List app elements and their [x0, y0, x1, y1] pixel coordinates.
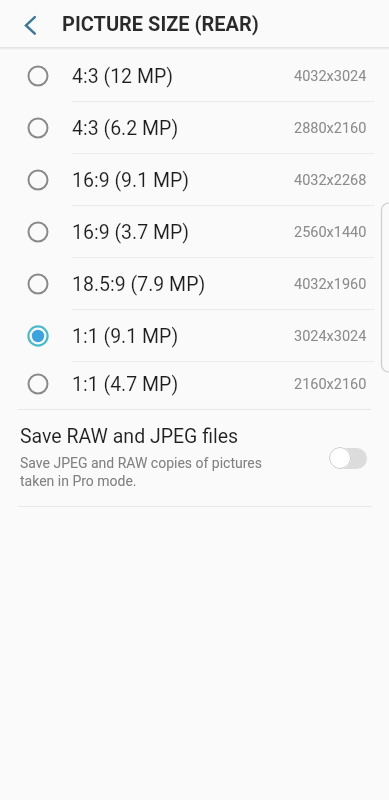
button[interactable]: 1:1 (9.1 MP): [0, 310, 389, 362]
staticText: 4:3 (12 MP): [72, 65, 174, 88]
button[interactable]: 18.5:9 (7.9 MP): [0, 258, 389, 310]
staticText: 2160x2160: [294, 376, 367, 393]
button[interactable]: 16:9 (9.1 MP): [0, 154, 389, 206]
staticText: 4032x3024: [294, 68, 367, 85]
button[interactable]: 1:1 (4.7 MP): [0, 362, 389, 406]
staticText: 16:9 (9.1 MP): [72, 169, 190, 192]
staticText: 1:1 (9.1 MP): [72, 325, 179, 348]
staticText: 4:3 (6.2 MP): [72, 117, 179, 140]
staticText: 18.5:9 (7.9 MP): [72, 273, 206, 296]
staticText: 16:9 (3.7 MP): [72, 221, 190, 244]
staticText: 4032x2268: [294, 172, 367, 189]
button[interactable]: 4:3 (6.2 MP): [0, 102, 389, 154]
staticText: 3024x3024: [294, 328, 367, 345]
staticText: PICTURE SIZE (REAR): [62, 12, 259, 35]
staticText: Save RAW and JPEG files: [20, 425, 239, 448]
staticText: 2560x1440: [294, 224, 367, 241]
button[interactable]: 16:9 (3.7 MP): [0, 206, 389, 258]
staticText: 2880x2160: [294, 120, 367, 137]
button[interactable]: Save RAW and JPEG files: [0, 410, 389, 506]
button[interactable]: [0, 0, 52, 47]
button[interactable]: 4:3 (12 MP): [0, 50, 389, 102]
staticText: 1:1 (4.7 MP): [72, 373, 179, 396]
staticText: Save JPEG and RAW copies of pictures tak…: [20, 455, 263, 489]
staticText: 4032x1960: [294, 276, 367, 293]
